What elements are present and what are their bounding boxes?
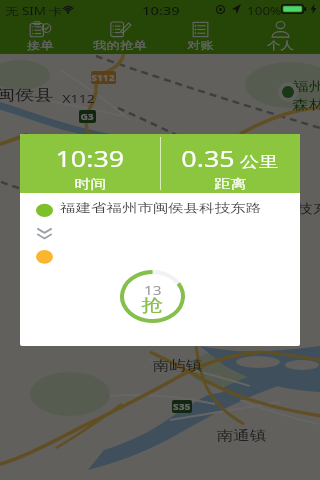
staticText: 10:39	[142, 3, 180, 19]
button[interactable]: 0.35 公里	[160, 134, 300, 193]
staticText: 0.35 公里	[181, 145, 279, 174]
staticText: 闽侯县	[0, 86, 53, 105]
staticText: 技东	[296, 200, 320, 216]
button[interactable]: 福建省福州市闽侯县科技东路	[60, 196, 300, 218]
staticText: 无 SIM 卡	[5, 4, 64, 18]
button[interactable]: 接单	[0, 20, 80, 54]
staticText: G3	[80, 111, 95, 122]
button[interactable]: 抢单	[120, 270, 185, 323]
button[interactable]: 对账	[160, 20, 240, 54]
button[interactable]: 个人	[240, 20, 320, 54]
staticText: S35	[173, 401, 191, 412]
staticText: 福州	[292, 78, 320, 94]
button[interactable]: 我的抢单	[80, 20, 160, 54]
staticText: 接单	[27, 39, 54, 52]
staticText: 福建省福州市闽侯县科技东路	[60, 200, 262, 215]
staticText: X112	[62, 91, 96, 106]
staticText: 森林	[292, 96, 320, 112]
staticText: 抢	[142, 295, 163, 316]
staticText: 对账	[187, 39, 214, 52]
staticText: 10:39	[55, 145, 124, 174]
staticText: 13	[144, 282, 162, 298]
button[interactable]: 10:39	[20, 134, 160, 193]
staticText: 个人	[267, 39, 294, 52]
staticText: S112	[91, 72, 116, 83]
staticText: 时间	[74, 176, 106, 192]
staticText: 100%	[247, 4, 282, 18]
staticText: 距离	[214, 176, 246, 192]
staticText: 我的抢单	[93, 39, 147, 52]
staticText: 南屿镇	[152, 357, 202, 373]
staticText: 南通镇	[216, 427, 266, 443]
